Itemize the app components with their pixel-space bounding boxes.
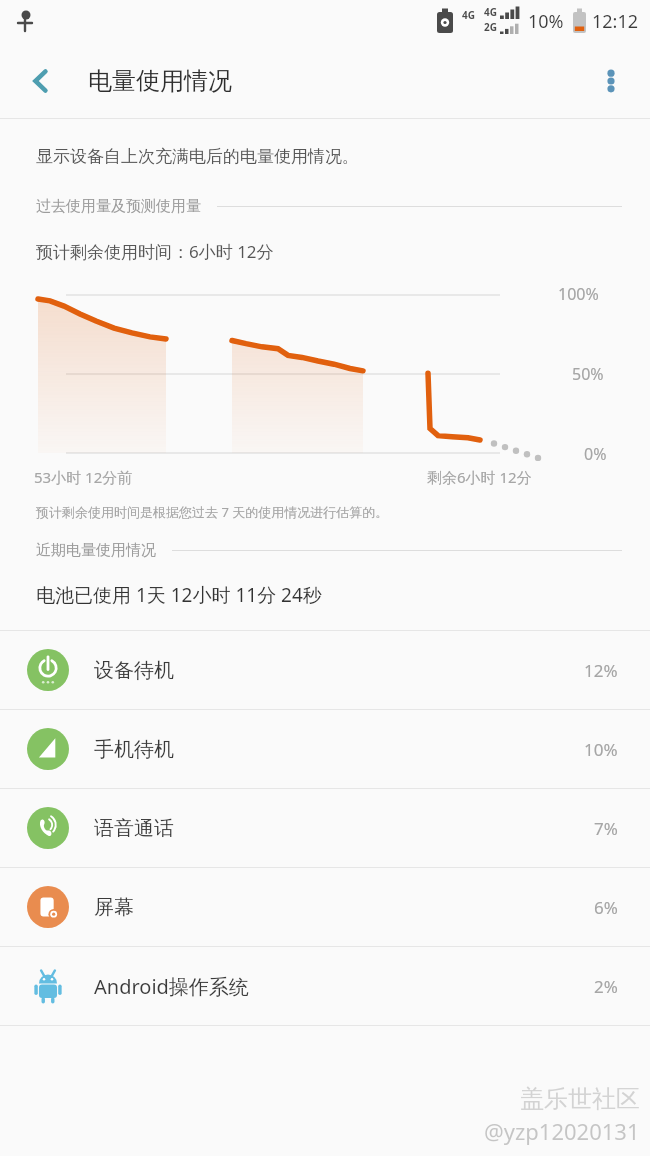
staticText: 4G [462, 8, 475, 22]
staticText: 2G [484, 20, 497, 34]
staticText: 12:12 [592, 9, 639, 34]
staticText: 盖乐世社区 [520, 1084, 640, 1114]
staticText: 100% [558, 283, 599, 305]
staticText: 7% [594, 817, 618, 840]
staticText: 2% [594, 975, 618, 998]
staticText: 屏幕 [94, 895, 594, 920]
button[interactable]: 手机待机 [0, 710, 650, 788]
staticText: 12% [584, 659, 618, 682]
staticText: 50% [572, 363, 604, 385]
staticText: 近期电量使用情况 [36, 541, 156, 560]
staticText: Android操作系统 [94, 973, 594, 1000]
staticText: 53小时 12分前 [34, 467, 133, 487]
staticText: 手机待机 [94, 737, 584, 762]
staticText: 预计剩余使用时间是根据您过去 7 天的使用情况进行估算的。 [36, 503, 389, 521]
button[interactable]: 语音通话 [0, 789, 650, 867]
staticText: 电池已使用 1天 12小时 11分 24秒 [36, 582, 322, 608]
staticText: 10% [528, 9, 564, 34]
staticText: 0% [584, 443, 607, 465]
staticText: 显示设备自上次充满电后的电量使用情况。 [36, 146, 359, 167]
button[interactable]: More options [582, 52, 640, 110]
button[interactable]: Android操作系统 [0, 947, 650, 1025]
staticText: 4G [484, 5, 497, 19]
staticText: 过去使用量及预测使用量 [36, 197, 201, 216]
staticText: 10% [584, 738, 618, 761]
staticText: @yzp12020131 [484, 1116, 640, 1146]
staticText: 6% [594, 896, 618, 919]
staticText: 设备待机 [94, 658, 584, 683]
staticText: 语音通话 [94, 816, 594, 841]
button[interactable]: Back [12, 52, 70, 110]
button[interactable]: 屏幕 [0, 868, 650, 946]
staticText: 预计剩余使用时间：6小时 12分 [36, 240, 274, 263]
button[interactable]: 设备待机 [0, 631, 650, 709]
staticText: 剩余6小时 12分 [427, 467, 532, 487]
staticText: 电量使用情况 [88, 66, 232, 96]
